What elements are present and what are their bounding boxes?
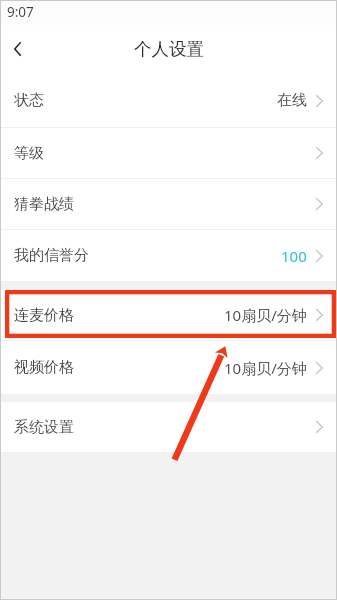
staticText: 个人设置 xyxy=(134,38,204,60)
staticText: 9:07 xyxy=(7,3,34,21)
staticText: 状态 xyxy=(14,91,44,110)
button[interactable]: 等级 xyxy=(0,128,337,179)
staticText: 在线 xyxy=(277,91,307,110)
button[interactable]: 我的信誉分 xyxy=(0,230,337,281)
button[interactable]: 状态 xyxy=(0,74,337,128)
staticText: 猜拳战绩 xyxy=(14,195,74,214)
button[interactable]: 连麦价格 xyxy=(0,290,337,341)
staticText: 等级 xyxy=(14,144,44,163)
staticText: 10扇贝/分钟 xyxy=(224,358,307,378)
staticText: 我的信誉分 xyxy=(14,246,89,265)
button[interactable]: Back xyxy=(0,25,36,74)
button[interactable]: 猜拳战绩 xyxy=(0,179,337,230)
button[interactable]: 系统设置 xyxy=(0,402,337,452)
staticText: 视频价格 xyxy=(14,358,74,377)
staticText: 连麦价格 xyxy=(14,306,74,325)
staticText: 系统设置 xyxy=(14,418,74,437)
staticText: 10扇贝/分钟 xyxy=(224,305,307,325)
button[interactable]: 视频价格 xyxy=(0,341,337,394)
staticText: 100 xyxy=(281,246,307,266)
